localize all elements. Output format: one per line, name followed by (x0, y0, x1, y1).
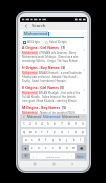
button[interactable]: l (77, 137, 84, 143)
staticText: k (73, 138, 75, 142)
staticText: v (52, 146, 54, 150)
button[interactable]: m (70, 145, 77, 151)
button[interactable]: a (23, 137, 29, 143)
staticText: 8 (68, 122, 70, 126)
button[interactable]: 5 (45, 121, 51, 127)
staticText: l (80, 138, 81, 142)
button[interactable]: j (63, 137, 70, 143)
staticText: Mohammad (22, 111, 38, 114)
staticText: Select Origin (49, 40, 67, 44)
button[interactable]: M Origins - Boy Names (22, 105, 85, 114)
button[interactable]: e (33, 129, 39, 135)
button[interactable]: K Origins - Girl Names (22, 85, 85, 103)
button[interactable]: Select Origin (45, 40, 67, 44)
staticText: Mohammad (43, 115, 61, 119)
button[interactable]: r (39, 129, 45, 135)
button[interactable]: Shift (21, 145, 29, 151)
button[interactable]: g (49, 137, 56, 143)
button[interactable]: All Origin (23, 40, 41, 44)
button[interactable]: p (79, 129, 86, 135)
button[interactable]: , (30, 153, 37, 159)
staticText: r (41, 130, 43, 134)
button[interactable]: . (68, 153, 75, 159)
staticText: t (47, 130, 49, 134)
button[interactable]: 4 (39, 121, 45, 127)
button[interactable]: 0 (79, 121, 86, 127)
button[interactable]: 9 (72, 121, 79, 127)
button[interactable]: Recents (32, 161, 38, 167)
staticText: ··· (82, 115, 85, 119)
button[interactable]: u (58, 129, 65, 135)
staticText: 9 (75, 122, 77, 126)
staticText: Mohamed (27, 115, 42, 119)
button[interactable]: i (65, 129, 72, 135)
button[interactable]: Mohammed (62, 115, 80, 119)
button[interactable]: Done (75, 153, 86, 159)
button[interactable]: x (35, 145, 42, 151)
button[interactable]: A Origins - Girl Names (22, 45, 85, 63)
staticText: q (23, 130, 25, 134)
staticText: Mohammad (22, 71, 38, 75)
staticText: UTHMAN wife Arianna - Binny Alishan - (38, 51, 82, 55)
button[interactable]: Back (69, 161, 75, 167)
staticText: (5) (62, 105, 67, 110)
button[interactable]: Mohammad (24, 31, 47, 36)
button[interactable]: v (49, 145, 56, 151)
button[interactable]: 8 (65, 121, 72, 127)
button[interactable]: Mohamed (27, 115, 42, 119)
staticText: 3 (35, 122, 37, 126)
staticText: 6 (54, 122, 56, 126)
button[interactable]: b (56, 145, 63, 151)
other: Open (82, 65, 85, 75)
staticText: Taufiq - Saied. hamdoonia Hasnain - Hamb… (22, 79, 82, 83)
staticText: f (45, 138, 47, 142)
staticText: here good Ulfara Khaleda - stariting Kha… (22, 99, 82, 103)
button[interactable]: w (27, 129, 33, 135)
button[interactable]: y (51, 129, 58, 135)
button[interactable]: k (70, 137, 77, 143)
staticText: o (75, 130, 77, 134)
button[interactable]: More suggestions (81, 115, 85, 119)
staticText: All Origin (27, 40, 41, 44)
button[interactable]: f (42, 137, 49, 143)
button[interactable]: Backspace (77, 145, 86, 151)
button[interactable]: o (72, 129, 79, 135)
button[interactable]: Home (51, 161, 57, 167)
other: Open (82, 45, 85, 55)
staticText: Fuli Ali Khadla - Salwa breast of the Ja… (22, 95, 82, 99)
button[interactable]: Symbols (21, 153, 30, 159)
staticText: Khadiq watt enthused - Adeelat Fida Hana… (22, 75, 82, 79)
button[interactable]: q (21, 129, 27, 135)
staticText: j (66, 138, 67, 142)
button[interactable]: t (45, 129, 51, 135)
button[interactable]: 7 (58, 121, 65, 127)
button[interactable]: 2 (27, 121, 33, 127)
staticText: (3) (61, 65, 66, 70)
button[interactable]: n (63, 145, 70, 151)
staticText: Mohammad (24, 31, 47, 36)
button[interactable]: 1 (21, 121, 27, 127)
button[interactable]: Space (37, 153, 68, 159)
staticText: b (59, 146, 61, 150)
button[interactable]: Back (23, 23, 29, 29)
other: Open (82, 105, 85, 114)
staticText: . (71, 154, 72, 158)
button[interactable]: H Origins - Boy Names (22, 65, 85, 83)
button[interactable]: s (29, 137, 35, 143)
button[interactable]: Expand toolbar (22, 115, 26, 119)
button[interactable]: z (29, 145, 35, 151)
staticText: (7) (61, 45, 66, 50)
staticText: e (35, 130, 37, 134)
button[interactable]: c (42, 145, 49, 151)
staticText: y (54, 130, 56, 134)
staticText: Search (32, 23, 46, 29)
button[interactable]: 3 (33, 121, 39, 127)
button[interactable]: Mohammad (43, 115, 61, 119)
staticText: IMLAN Khadijah - first wife of the Proph… (38, 91, 82, 95)
button[interactable]: d (35, 137, 42, 143)
staticText: K Origins - Girl Names (22, 85, 59, 90)
staticText: Done (77, 155, 84, 158)
button[interactable]: h (56, 137, 63, 143)
staticText: 1 (23, 122, 25, 126)
button[interactable]: 6 (51, 121, 58, 127)
